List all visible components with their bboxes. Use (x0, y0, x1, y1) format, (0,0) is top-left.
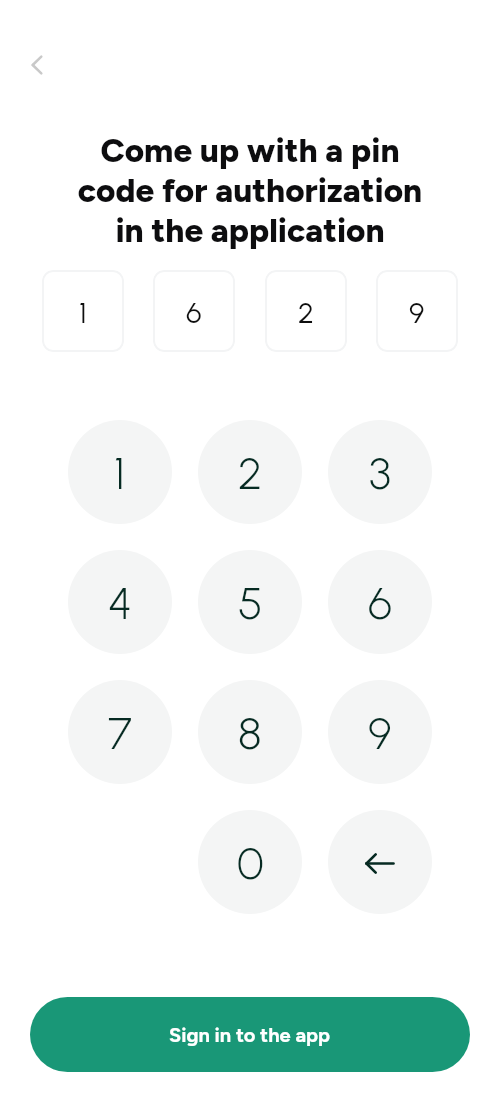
staticText: 9 (368, 706, 392, 760)
button[interactable]: 2 (265, 270, 347, 352)
staticText: 4 (108, 576, 133, 630)
button[interactable]: 3 (328, 420, 432, 524)
button[interactable]: 7 (68, 680, 172, 784)
staticText: 1 (79, 295, 87, 330)
staticText: Sign in to the app (169, 1023, 331, 1047)
staticText: 0 (237, 836, 264, 890)
button[interactable]: 2 (198, 420, 302, 524)
staticText: 6 (186, 295, 202, 330)
staticText: 9 (409, 295, 425, 330)
staticText: 5 (238, 576, 263, 630)
button[interactable]: 6 (328, 550, 432, 654)
staticText: 6 (368, 576, 393, 630)
button[interactable]: 8 (198, 680, 302, 784)
staticText: 2 (298, 295, 314, 330)
staticText: 8 (238, 706, 262, 760)
staticText: 7 (108, 706, 132, 760)
button[interactable]: 9 (376, 270, 458, 352)
button[interactable]: 1 (68, 420, 172, 524)
button[interactable]: 5 (198, 550, 302, 654)
button[interactable]: 6 (153, 270, 235, 352)
button[interactable]: 4 (68, 550, 172, 654)
button[interactable]: Delete (328, 810, 432, 914)
staticText: Come up with a pin code for authorizatio… (32, 130, 468, 250)
staticText: 3 (369, 446, 391, 500)
staticText: 1 (114, 446, 126, 500)
staticText: 2 (238, 446, 263, 500)
button[interactable]: 1 (42, 270, 124, 352)
button[interactable]: 9 (328, 680, 432, 784)
button[interactable]: 0 (198, 810, 302, 914)
button[interactable]: Sign in to the app (30, 997, 470, 1072)
button[interactable]: Back (18, 42, 62, 86)
